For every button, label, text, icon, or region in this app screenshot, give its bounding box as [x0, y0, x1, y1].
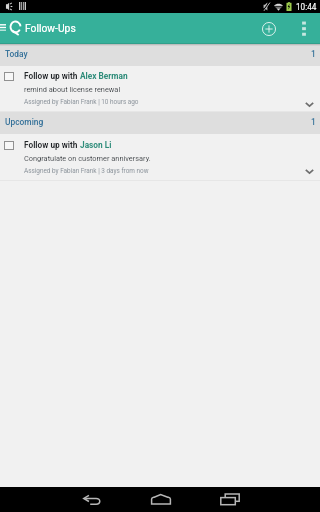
staticText: 10:44: [296, 2, 317, 12]
staticText: remind about license renewal: [24, 85, 121, 94]
staticText: Follow up with: [24, 140, 80, 150]
button[interactable]: Recent apps: [205, 487, 251, 512]
staticText: Follow-Ups: [25, 22, 76, 34]
staticText: Assigned by Fabian Frank | 3 days from n…: [24, 167, 149, 175]
staticText: 1: [311, 117, 316, 127]
button[interactable]: Home: [137, 487, 183, 512]
staticText: Jason Li: [80, 140, 112, 150]
button[interactable]: More options: [293, 13, 315, 44]
button[interactable]: Follow up with: [0, 66, 320, 112]
staticText: 1: [311, 49, 316, 59]
staticText: Today: [5, 49, 28, 59]
staticText: Alex Berman: [80, 71, 128, 81]
staticText: Assigned by Fabian Frank | 10 hours ago: [24, 98, 139, 106]
button[interactable]: Back: [68, 487, 115, 512]
staticText: Congratulate on customer anniversary.: [24, 154, 151, 163]
staticText: Upcoming: [5, 117, 44, 127]
staticText: Follow up with: [24, 71, 80, 81]
button[interactable]: Navigation menu: [0, 13, 26, 43]
button[interactable]: Follow up with: [0, 134, 320, 181]
button[interactable]: Add follow-up: [255, 13, 283, 44]
